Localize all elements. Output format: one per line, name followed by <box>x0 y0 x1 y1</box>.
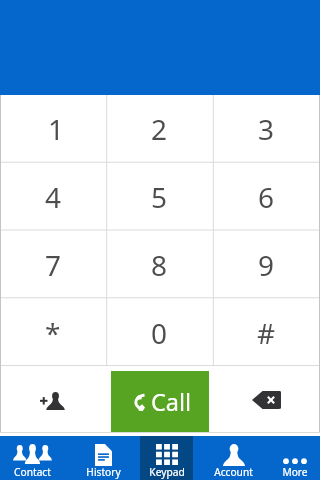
button[interactable]: Backspace <box>213 367 320 433</box>
staticText: # <box>257 314 276 352</box>
staticText: Keypad <box>149 465 185 479</box>
button[interactable]: 9 <box>213 231 320 299</box>
button[interactable]: Add contact <box>0 367 106 433</box>
button[interactable]: History <box>77 436 130 480</box>
button[interactable]: 1 <box>0 95 106 163</box>
button[interactable]: 5 <box>106 163 213 231</box>
staticText: 6 <box>258 178 275 216</box>
staticText: More <box>282 465 308 479</box>
button[interactable]: 3 <box>213 95 320 163</box>
button[interactable]: 4 <box>0 163 106 231</box>
button[interactable]: 0 <box>106 299 213 367</box>
staticText: History <box>86 465 121 479</box>
button[interactable]: # <box>213 299 320 367</box>
button[interactable]: Call <box>111 371 209 432</box>
button[interactable]: 7 <box>0 231 106 299</box>
staticText: 2 <box>151 110 168 148</box>
staticText: 7 <box>45 246 62 284</box>
button[interactable]: Contact <box>6 436 59 480</box>
button[interactable]: * <box>0 299 106 367</box>
button[interactable]: 8 <box>106 231 213 299</box>
button[interactable]: Keypad <box>140 436 193 480</box>
staticText: 0 <box>151 314 168 352</box>
staticText: Contact <box>14 465 51 479</box>
staticText: 4 <box>45 178 62 216</box>
staticText: 3 <box>258 110 275 148</box>
button[interactable]: Account <box>207 436 260 480</box>
staticText: Call <box>151 386 192 418</box>
button[interactable]: More <box>268 436 320 480</box>
staticText: * <box>45 314 61 352</box>
staticText: Account <box>214 465 253 479</box>
staticText: 9 <box>258 246 275 284</box>
staticText: 5 <box>151 178 168 216</box>
button[interactable]: 6 <box>213 163 320 231</box>
staticText: 8 <box>151 246 168 284</box>
staticText: 1 <box>48 110 65 148</box>
button[interactable]: 2 <box>106 95 213 163</box>
